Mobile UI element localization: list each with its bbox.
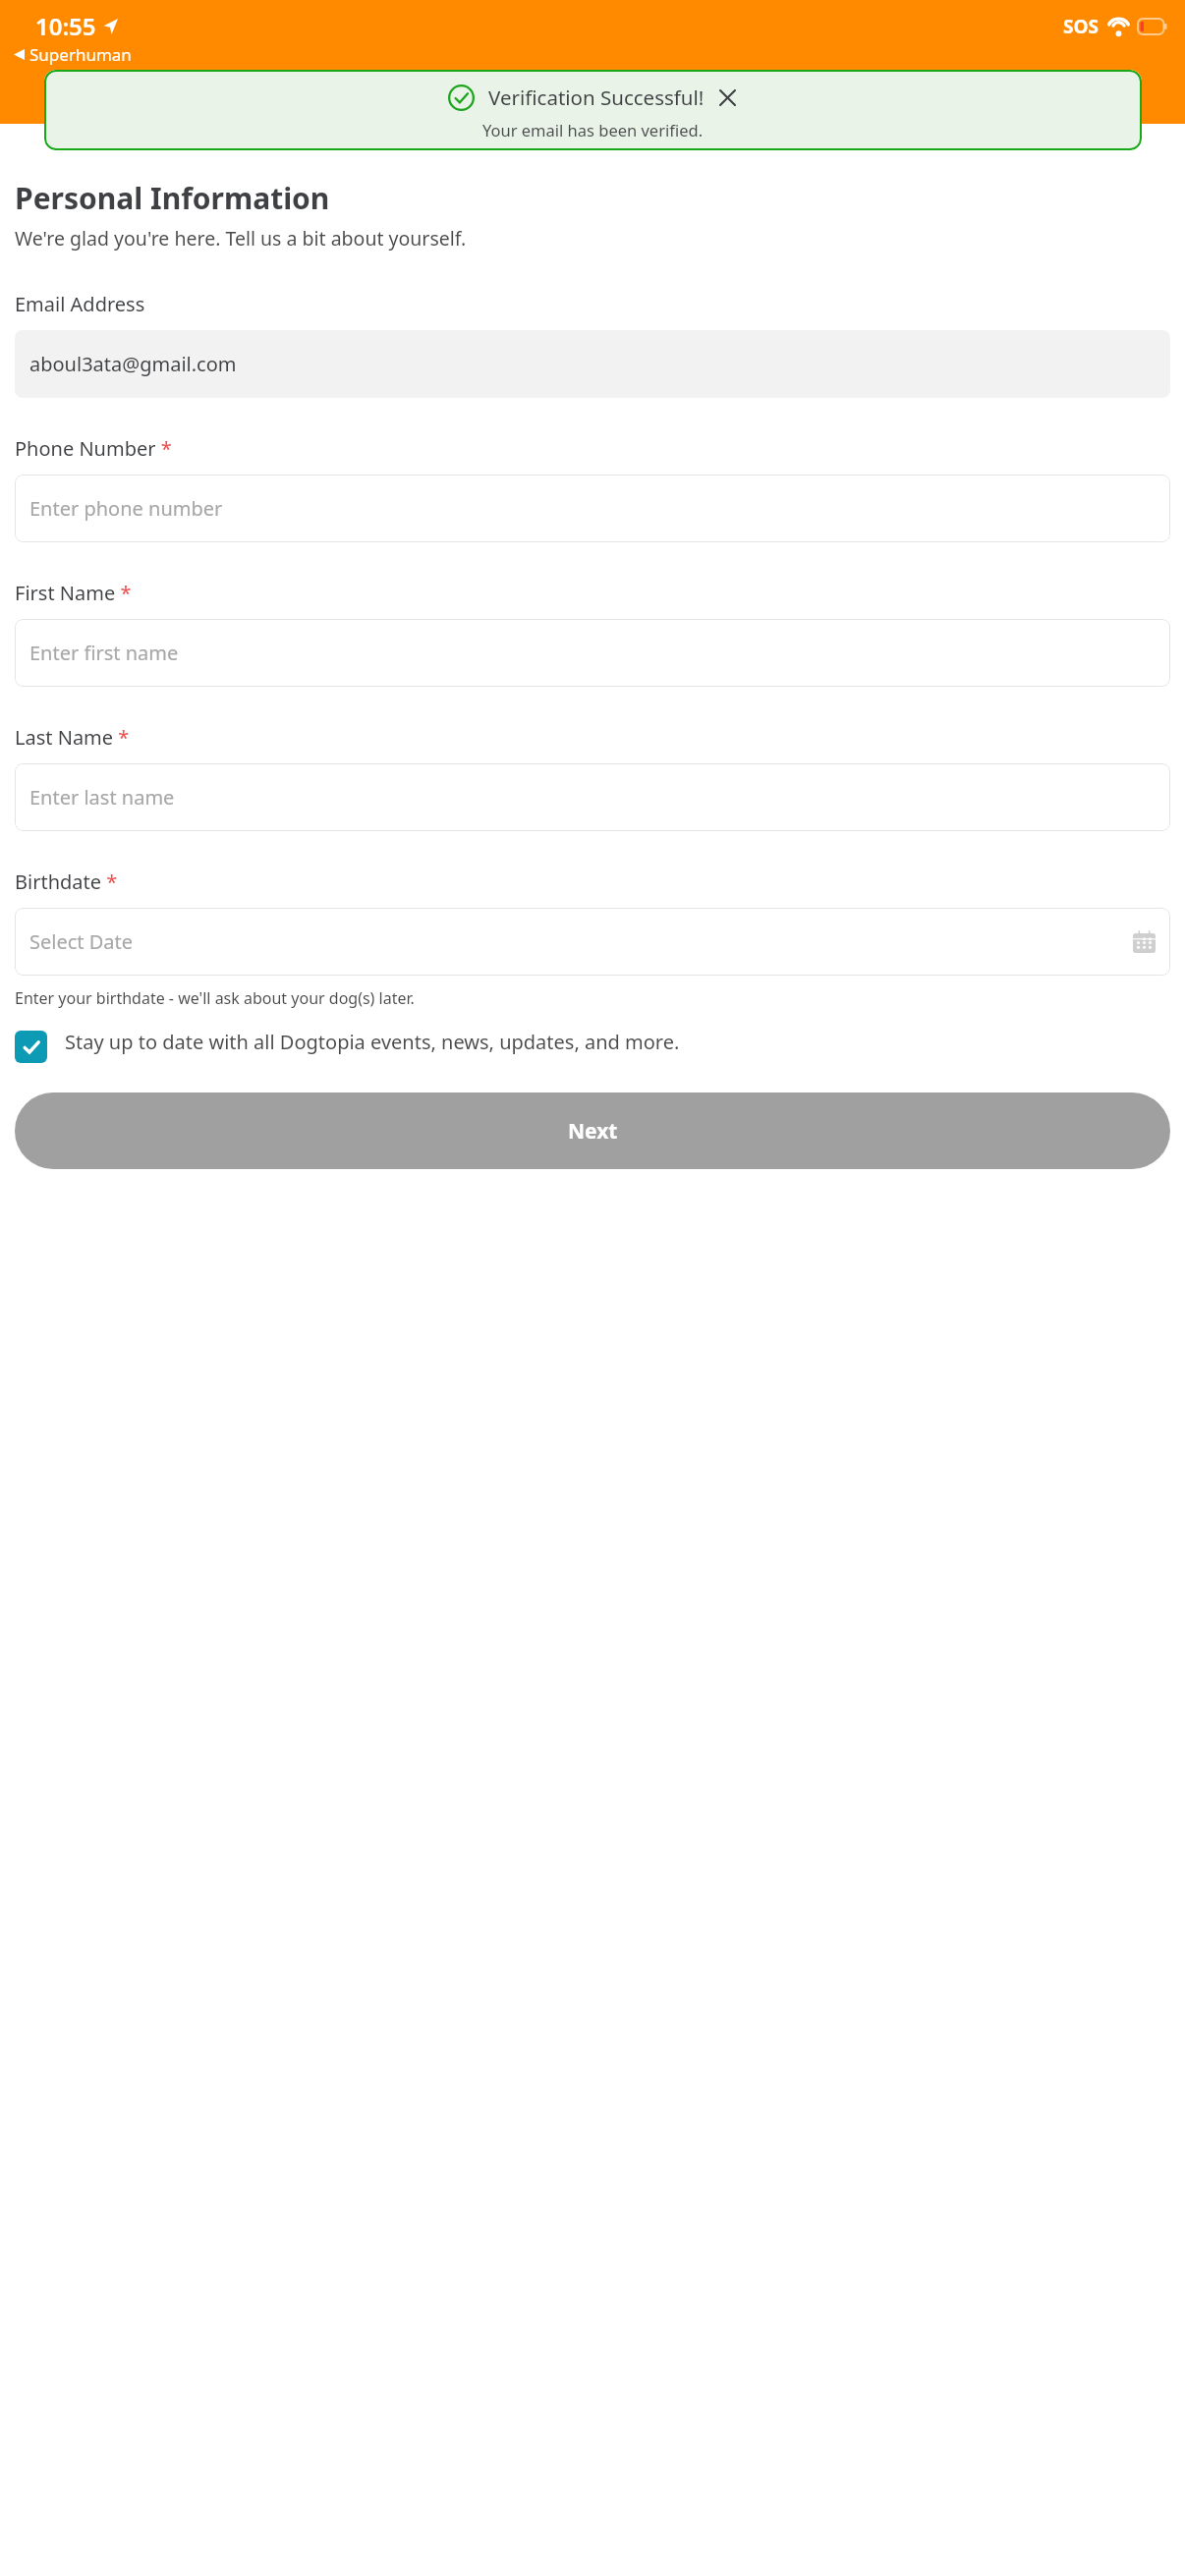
staticText: We're glad you're here. Tell us a bit ab…: [15, 225, 467, 252]
staticText: Enter last name: [29, 784, 175, 811]
staticText: Personal Information: [15, 178, 330, 218]
staticText: 10:55: [35, 10, 96, 42]
staticText: First Name *: [15, 580, 132, 606]
staticText: Stay up to date with all Dogtopia events…: [65, 1029, 680, 1055]
staticText: Verification Successful!: [488, 84, 705, 111]
button[interactable]: Next: [15, 1092, 1170, 1169]
button[interactable]: Select Date: [15, 908, 1170, 976]
button[interactable]: Back to Superhuman: [14, 43, 132, 66]
button[interactable]: Enter last name: [15, 763, 1170, 831]
staticText: Enter your birthdate - we'll ask about y…: [15, 987, 415, 1009]
staticText: Superhuman: [29, 43, 132, 66]
staticText: Your email has been verified.: [482, 119, 704, 137]
staticText: Enter first name: [29, 640, 179, 666]
staticText: Phone Number *: [15, 435, 172, 462]
staticText: Email Address: [15, 291, 145, 317]
button[interactable]: Dismiss: [716, 86, 738, 108]
staticText: Enter phone number: [29, 495, 223, 522]
staticText: aboul3ata@gmail.com: [29, 351, 237, 377]
button[interactable]: aboul3ata@gmail.com: [15, 330, 1170, 398]
staticText: Select Date: [29, 928, 134, 955]
staticText: Next: [568, 1117, 618, 1146]
button[interactable]: Stay up to date with all Dogtopia events…: [15, 1029, 1170, 1063]
staticText: Last Name *: [15, 724, 130, 751]
button[interactable]: Enter phone number: [15, 475, 1170, 542]
button[interactable]: Enter first name: [15, 619, 1170, 687]
staticText: Birthdate *: [15, 868, 118, 895]
staticText: SOS: [1063, 14, 1099, 39]
